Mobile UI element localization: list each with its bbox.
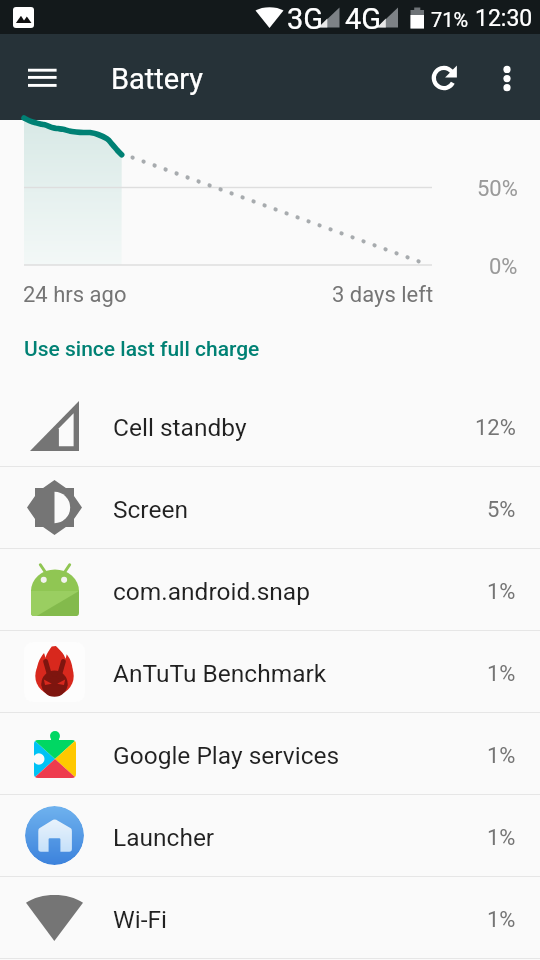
- staticText: AnTuTu Benchmark: [113, 659, 487, 688]
- button[interactable]: Wi-Fi: [0, 877, 540, 958]
- button[interactable]: More options: [479, 44, 535, 100]
- staticText: 5%: [487, 497, 516, 523]
- staticText: 71%: [431, 8, 469, 31]
- staticText: 12%: [475, 415, 516, 441]
- button[interactable]: Screen: [0, 467, 540, 548]
- staticText: Cell standby: [113, 413, 475, 442]
- staticText: 1%: [487, 825, 516, 851]
- staticText: com.android.snap: [113, 577, 487, 606]
- button[interactable]: com.android.snap: [0, 549, 540, 630]
- staticText: 50%: [477, 176, 518, 202]
- button[interactable]: Use since last full charge: [0, 324, 540, 385]
- staticText: 1%: [487, 743, 516, 769]
- button[interactable]: Google Play services: [0, 713, 540, 794]
- button[interactable]: Open navigation drawer: [14, 44, 70, 100]
- staticText: Wi-Fi: [113, 905, 487, 934]
- staticText: Launcher: [113, 823, 487, 852]
- staticText: 1%: [487, 907, 516, 933]
- button[interactable]: Launcher: [0, 795, 540, 876]
- button[interactable]: Cell standby: [0, 385, 540, 466]
- staticText: Screen: [113, 495, 487, 524]
- staticText: Google Play services: [113, 741, 487, 770]
- button[interactable]: Refresh: [416, 44, 472, 100]
- staticText: 3G: [287, 2, 324, 36]
- staticText: 3 days left: [332, 282, 434, 308]
- staticText: 1%: [487, 579, 516, 605]
- staticText: Use since last full charge: [24, 337, 260, 362]
- staticText: 1%: [487, 661, 516, 687]
- staticText: 4G: [345, 2, 382, 36]
- button[interactable]: AnTuTu Benchmark: [0, 631, 540, 712]
- staticText: Battery: [111, 62, 203, 96]
- staticText: 0%: [489, 254, 518, 280]
- staticText: 24 hrs ago: [23, 282, 127, 308]
- staticText: 12:30: [475, 5, 533, 32]
